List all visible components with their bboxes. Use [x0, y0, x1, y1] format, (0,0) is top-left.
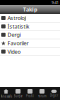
- staticText: Yorum: [38, 94, 46, 98]
- staticText: Burçlar: [13, 94, 22, 98]
- staticText: Favoriler: [7, 40, 28, 47]
- button[interactable]: Ana sayfa: [0, 87, 12, 100]
- staticText: İstatistik: [7, 23, 29, 30]
- staticText: Diğer: [50, 94, 58, 97]
- staticText: Ana sayfa: [0, 95, 11, 98]
- button[interactable]: İstatistik: [0, 22, 60, 31]
- staticText: Video: [7, 48, 20, 55]
- button[interactable]: Profil: [24, 87, 36, 100]
- staticText: Takip: [23, 6, 37, 13]
- staticText: Profil: [26, 94, 34, 98]
- staticText: Dergi: [7, 31, 20, 38]
- button[interactable]: Burçlar: [12, 87, 24, 100]
- button[interactable]: Favoriler: [0, 39, 60, 48]
- button[interactable]: Video: [0, 48, 60, 56]
- button[interactable]: Astroloji: [0, 14, 60, 22]
- button[interactable]: Diğer: [48, 87, 60, 100]
- button[interactable]: Yorum: [36, 87, 48, 100]
- button[interactable]: Dergi: [0, 31, 60, 39]
- staticText: 9:41: [51, 0, 58, 5]
- staticText: Astroloji: [7, 14, 26, 22]
